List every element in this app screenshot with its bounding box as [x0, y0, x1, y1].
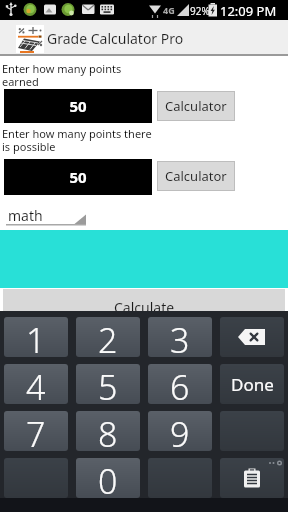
button[interactable]: 8	[76, 411, 140, 451]
staticText: 2	[98, 317, 118, 357]
staticText: 7	[26, 411, 46, 451]
button[interactable]	[220, 411, 284, 451]
staticText: 4G	[163, 4, 175, 16]
button[interactable]: Done	[220, 364, 284, 404]
staticText: 8	[98, 411, 118, 451]
button[interactable]: 6	[148, 364, 212, 404]
button[interactable]	[220, 317, 284, 357]
button[interactable]	[4, 458, 68, 498]
staticText: Grade Calculator Pro	[47, 29, 184, 48]
button[interactable]	[220, 458, 284, 498]
staticText: Calculate	[114, 298, 175, 317]
button[interactable]: 9	[148, 411, 212, 451]
button[interactable]: 0	[76, 458, 140, 498]
staticText: 50	[69, 167, 87, 187]
button[interactable]: 3	[148, 317, 212, 357]
button[interactable]: 5	[76, 364, 140, 404]
button[interactable]: Calculate	[3, 289, 285, 315]
staticText: 4	[26, 364, 46, 404]
button[interactable]: 2	[76, 317, 140, 357]
button[interactable]: Calculator	[157, 161, 235, 191]
staticText: Enter how many points there is possible	[2, 126, 152, 154]
button[interactable]: 50	[4, 159, 152, 195]
staticText: 0	[98, 458, 118, 498]
button[interactable]: math	[2, 200, 90, 227]
staticText: 5	[98, 364, 118, 404]
staticText: 9	[170, 411, 190, 451]
staticText: 12:09 PM	[220, 2, 277, 20]
button[interactable]: 7	[4, 411, 68, 451]
staticText: 6	[170, 364, 190, 404]
staticText: Calculator	[165, 167, 227, 185]
button[interactable]: Calculator	[157, 91, 235, 121]
staticText: math	[8, 206, 43, 225]
staticText: Calculator	[165, 97, 227, 115]
button[interactable]: 4	[4, 364, 68, 404]
button[interactable]: 50	[4, 89, 152, 123]
staticText: 3	[170, 317, 190, 357]
staticText: Enter how many points earned	[2, 61, 122, 89]
staticText: Done	[231, 373, 274, 396]
button[interactable]	[148, 458, 212, 498]
staticText: 1	[26, 317, 46, 357]
button[interactable]: 1	[4, 317, 68, 357]
staticText: 50	[69, 96, 87, 116]
staticText: 92%	[190, 4, 210, 18]
